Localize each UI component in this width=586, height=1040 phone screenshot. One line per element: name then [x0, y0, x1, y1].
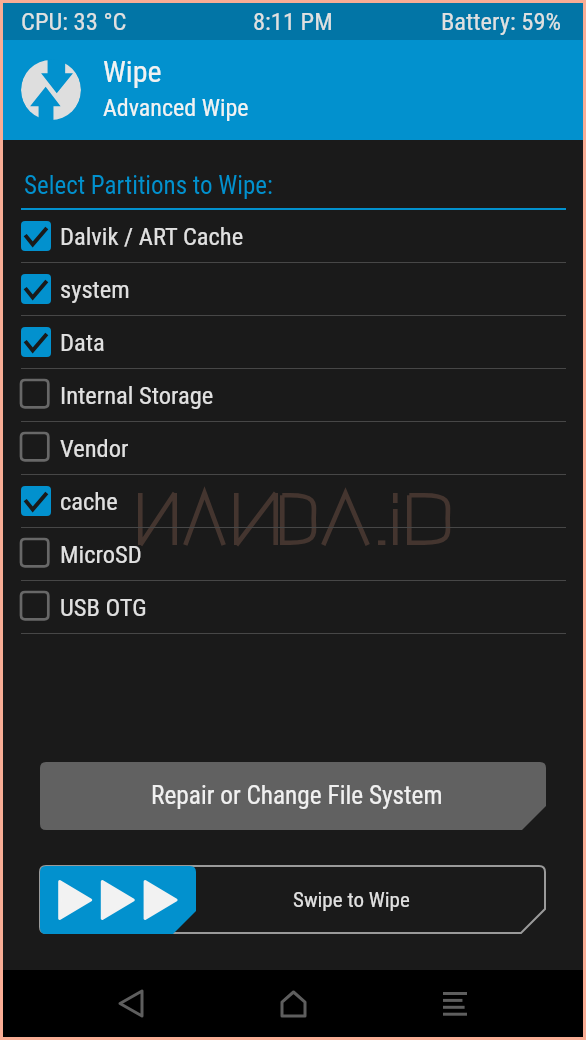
staticText: Battery: 59% [441, 7, 562, 36]
button[interactable]: USB OTG [3, 581, 583, 633]
staticText: system [60, 275, 130, 304]
staticText: Swipe to Wipe [293, 888, 410, 913]
staticText: Wipe [103, 54, 162, 89]
button[interactable]: Dalvik / ART Cache [3, 210, 583, 262]
staticText: 8:11 PM [253, 7, 333, 36]
staticText: CPU: 33 °C [21, 7, 127, 36]
staticText: Advanced Wipe [103, 94, 249, 122]
staticText: Select Partitions to Wipe: [24, 171, 273, 200]
staticText: Repair or Change File System [151, 781, 443, 811]
staticText: cache [60, 487, 118, 516]
button[interactable]: Internal Storage [3, 369, 583, 421]
button[interactable]: MicroSD [3, 528, 583, 580]
button[interactable]: system [3, 263, 583, 315]
button[interactable]: Menu [415, 970, 495, 1037]
button[interactable]: Back [91, 970, 171, 1037]
button[interactable]: Home [253, 970, 333, 1037]
button[interactable]: Swipe to Wipe [40, 866, 546, 934]
button[interactable]: Repair or Change File System [40, 762, 546, 830]
button[interactable]: cache [3, 475, 583, 527]
staticText: Vendor [60, 434, 129, 463]
button[interactable]: Vendor [3, 422, 583, 474]
staticText: Dalvik / ART Cache [60, 222, 244, 251]
staticText: MicroSD [60, 540, 142, 569]
staticText: USB OTG [60, 593, 147, 622]
staticText: Data [60, 328, 105, 357]
staticText: Internal Storage [60, 381, 214, 410]
button[interactable]: Data [3, 316, 583, 368]
